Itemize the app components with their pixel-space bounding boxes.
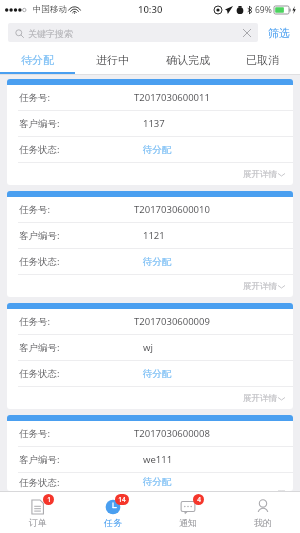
staticText: T2017030600010 bbox=[134, 203, 210, 216]
staticText: 待分配 bbox=[143, 368, 172, 380]
staticText: 客户编号: bbox=[19, 453, 60, 466]
staticText: 任务状态: bbox=[19, 476, 60, 489]
staticText: we111 bbox=[143, 453, 173, 466]
staticText: T2017030600009 bbox=[134, 315, 210, 328]
staticText: 我的 bbox=[254, 517, 272, 528]
staticText: 展开详情 bbox=[243, 393, 277, 404]
staticText: 待分配 bbox=[143, 476, 172, 488]
staticText: 待分配 bbox=[143, 144, 172, 156]
staticText: 待分配 bbox=[21, 53, 54, 67]
staticText: 客户编号: bbox=[19, 229, 60, 242]
staticText: 已取消 bbox=[246, 53, 279, 67]
button[interactable]: 进行中 bbox=[75, 46, 150, 74]
button[interactable]: 筛选 bbox=[258, 19, 300, 46]
staticText: 展开详情 bbox=[243, 281, 277, 292]
staticText: 筛选 bbox=[268, 26, 290, 40]
button[interactable]: 1 bbox=[0, 492, 75, 533]
staticText: 任务 bbox=[104, 517, 122, 528]
staticText: 订单 bbox=[29, 517, 47, 528]
button[interactable]: 任务号: bbox=[7, 191, 293, 297]
staticText: wj bbox=[143, 341, 153, 354]
button[interactable]: 任务号: bbox=[7, 79, 293, 185]
button[interactable]: 任务号: bbox=[7, 303, 293, 409]
staticText: 任务号: bbox=[19, 427, 51, 440]
button[interactable]: 已取消 bbox=[225, 46, 300, 74]
button[interactable]: 14 bbox=[75, 492, 150, 533]
staticText: 任务号: bbox=[19, 203, 51, 216]
staticText: 客户编号: bbox=[19, 117, 60, 130]
button[interactable]: 关键字搜索 bbox=[8, 23, 258, 42]
button[interactable]: 展开详情 bbox=[243, 281, 285, 292]
staticText: 任务号: bbox=[19, 315, 51, 328]
staticText: 1137 bbox=[143, 117, 165, 130]
button[interactable]: Clear bbox=[238, 24, 256, 42]
button[interactable]: 4 bbox=[150, 492, 225, 533]
staticText: 通知 bbox=[179, 517, 197, 528]
button[interactable]: 展开详情 bbox=[243, 393, 285, 404]
staticText: 进行中 bbox=[96, 53, 129, 67]
button[interactable]: 确认完成 bbox=[150, 46, 225, 74]
staticText: 69% bbox=[255, 4, 272, 16]
button[interactable]: 我的 bbox=[225, 492, 300, 533]
staticText: 中国移动 bbox=[33, 4, 67, 15]
staticText: 任务状态: bbox=[19, 255, 60, 268]
staticText: 关键字搜索 bbox=[28, 28, 73, 39]
staticText: 展开详情 bbox=[243, 169, 277, 180]
staticText: T2017030600008 bbox=[134, 427, 210, 440]
staticText: T2017030600011 bbox=[134, 91, 210, 104]
staticText: 客户编号: bbox=[19, 341, 60, 354]
staticText: 1 bbox=[47, 495, 51, 504]
staticText: 任务状态: bbox=[19, 143, 60, 156]
staticText: 待分配 bbox=[143, 256, 172, 268]
staticText: 1121 bbox=[143, 229, 165, 242]
button[interactable]: 任务号: bbox=[7, 415, 293, 491]
staticText: 任务状态: bbox=[19, 367, 60, 380]
staticText: 10:30 bbox=[138, 3, 163, 16]
staticText: 14 bbox=[118, 495, 126, 504]
staticText: 确认完成 bbox=[166, 53, 210, 67]
button[interactable]: 展开详情 bbox=[243, 169, 285, 180]
staticText: 任务号: bbox=[19, 91, 51, 104]
button[interactable]: 待分配 bbox=[0, 46, 75, 74]
staticText: 4 bbox=[197, 495, 201, 504]
